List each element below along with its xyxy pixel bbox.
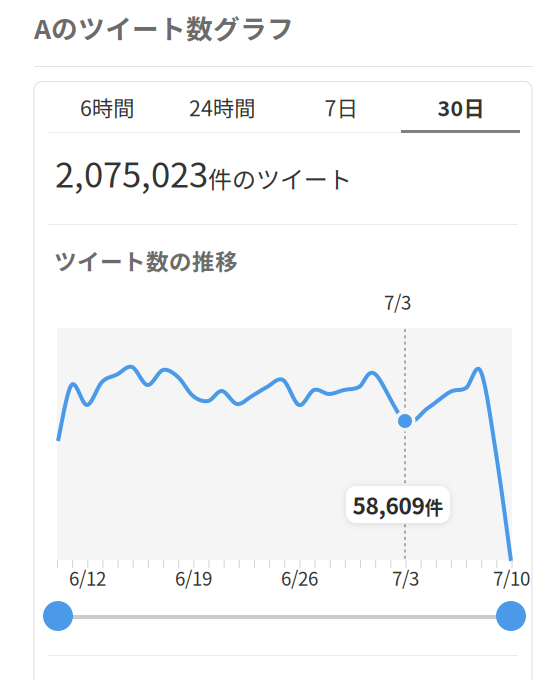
staticText: 58,609件	[352, 488, 443, 520]
button[interactable]: 24時間	[163, 82, 281, 132]
staticText: 7/3	[392, 564, 419, 591]
button[interactable]: Range end	[496, 601, 526, 631]
staticText: 6時間	[80, 92, 134, 122]
staticText: 7/3	[384, 288, 411, 315]
staticText: 30日	[437, 92, 484, 122]
button[interactable]: 7日	[282, 82, 400, 132]
staticText: 7日	[324, 92, 357, 122]
button[interactable]: 6時間	[48, 82, 166, 132]
button[interactable]: Range start	[43, 601, 73, 631]
staticText: 2,075,023件のツイート	[55, 148, 352, 197]
staticText: 6/19	[175, 564, 212, 591]
staticText: ツイート数の推移	[54, 244, 238, 277]
staticText: 24時間	[189, 92, 255, 122]
button[interactable]: 30日	[402, 82, 520, 132]
staticText: 6/26	[281, 564, 318, 591]
staticText: 7/10	[493, 564, 530, 591]
staticText: Aのツイート数グラフ	[34, 8, 294, 47]
staticText: 6/12	[69, 564, 106, 591]
